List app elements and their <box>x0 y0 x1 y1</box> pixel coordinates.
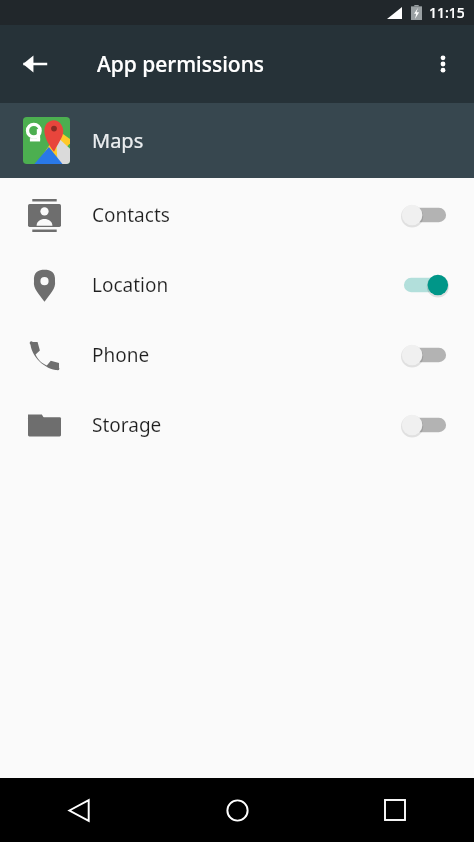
button[interactable]: Off <box>398 407 452 443</box>
button[interactable]: Location <box>0 250 474 320</box>
button[interactable]: Back <box>0 778 158 842</box>
staticText: 11:15 <box>429 3 465 22</box>
button[interactable]: On <box>398 267 452 303</box>
button[interactable]: Storage <box>0 390 474 460</box>
button[interactable]: Contacts <box>0 180 474 250</box>
staticText: Phone <box>92 342 398 368</box>
button[interactable]: Home <box>158 778 316 842</box>
button[interactable]: Maps <box>0 103 474 178</box>
staticText: Location <box>92 272 398 298</box>
staticText: App permissions <box>97 50 265 79</box>
button[interactable]: Navigate up <box>11 40 59 88</box>
button[interactable]: Phone <box>0 320 474 390</box>
staticText: Storage <box>92 412 398 438</box>
button[interactable]: More options <box>420 41 466 87</box>
button[interactable]: Off <box>398 197 452 233</box>
staticText: Contacts <box>92 202 398 228</box>
button[interactable]: Off <box>398 337 452 373</box>
button[interactable]: Recent apps <box>316 778 474 842</box>
staticText: Maps <box>92 127 144 154</box>
